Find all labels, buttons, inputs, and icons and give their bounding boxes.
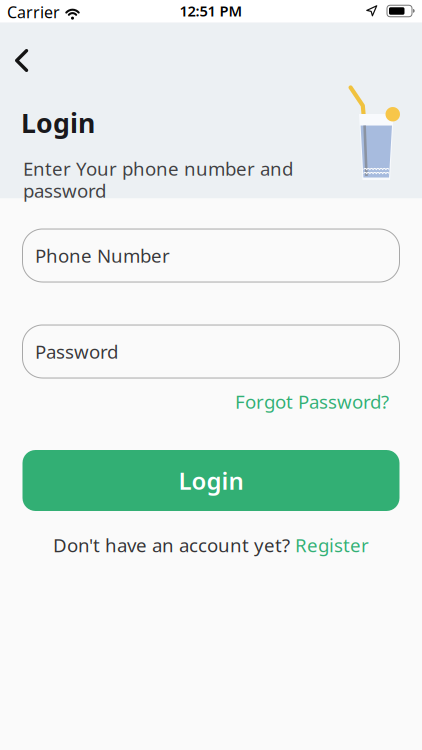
staticText: Login [178, 465, 243, 496]
button[interactable]: Login [22, 450, 399, 511]
staticText: Forgot Password? [235, 389, 389, 414]
button[interactable]: Back [7, 41, 36, 80]
button[interactable]: Phone Number [22, 229, 399, 282]
button[interactable]: Forgot Password? [235, 389, 389, 414]
staticText: Password [35, 339, 118, 364]
staticText: Phone Number [35, 243, 170, 268]
staticText: Don't have an account yet? [53, 532, 290, 557]
staticText: Carrier [7, 1, 60, 23]
staticText: Enter Your phone number and [23, 156, 293, 181]
staticText: password [23, 178, 106, 203]
button[interactable]: Register [295, 532, 369, 557]
button[interactable]: Password [22, 325, 399, 378]
staticText: Register [295, 532, 369, 557]
staticText: Login [21, 105, 95, 140]
staticText: 12:51 PM [179, 1, 242, 20]
